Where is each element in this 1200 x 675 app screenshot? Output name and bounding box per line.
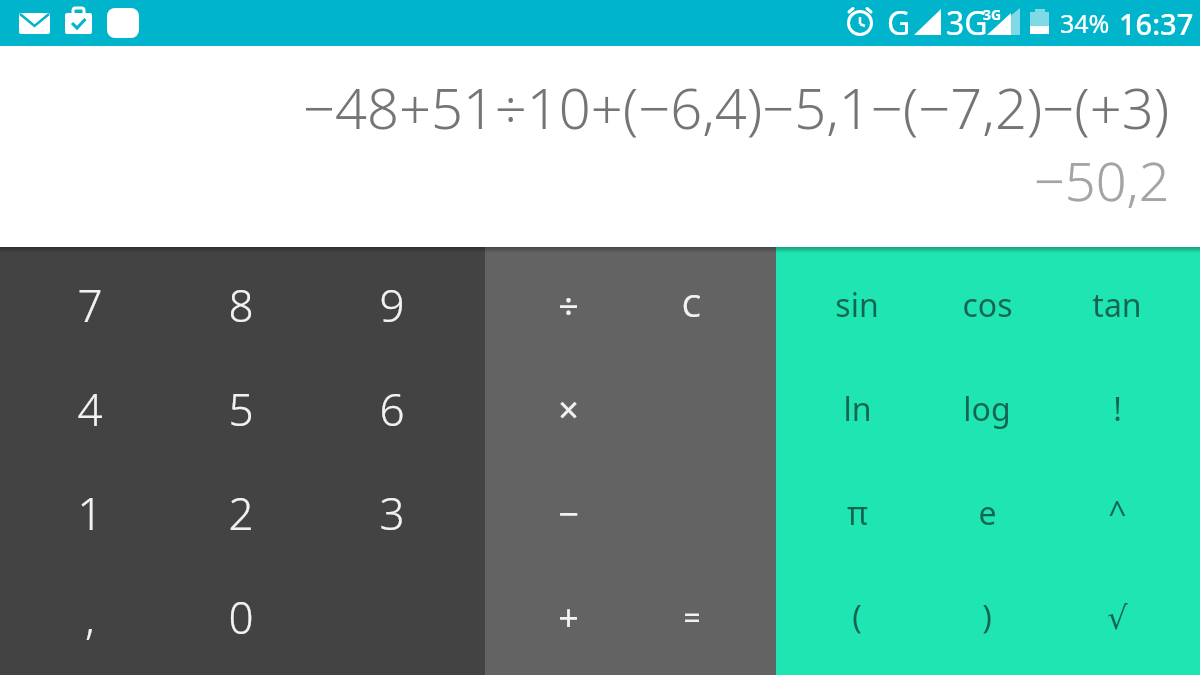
staticText: tan bbox=[1092, 283, 1142, 327]
staticText: 4 bbox=[77, 379, 103, 439]
staticText: cos bbox=[962, 283, 1013, 327]
staticText: log bbox=[963, 387, 1011, 431]
button[interactable]: 7 bbox=[14, 253, 165, 357]
button[interactable]: ÷ bbox=[507, 253, 630, 357]
button[interactable]: ^ bbox=[1052, 461, 1182, 565]
staticText: ! bbox=[1113, 387, 1122, 431]
staticText: = bbox=[683, 597, 701, 638]
staticText: π bbox=[847, 491, 868, 535]
button[interactable]: = bbox=[630, 565, 753, 669]
staticText: 2 bbox=[228, 483, 254, 543]
staticText: 9 bbox=[379, 275, 405, 335]
button[interactable]: tan bbox=[1052, 253, 1182, 357]
staticText: 8 bbox=[228, 275, 254, 335]
button[interactable]: ( bbox=[792, 565, 922, 669]
staticText: ) bbox=[982, 595, 992, 639]
staticText: 0 bbox=[228, 587, 254, 647]
staticText: 6 bbox=[379, 379, 405, 439]
button[interactable]: log bbox=[922, 357, 1052, 461]
button[interactable]: 3 bbox=[316, 461, 467, 565]
button[interactable]: 6 bbox=[316, 357, 467, 461]
staticText: 7 bbox=[77, 275, 103, 335]
button[interactable]: ) bbox=[922, 565, 1052, 669]
staticText: − bbox=[558, 489, 579, 538]
button[interactable]: ! bbox=[1052, 357, 1182, 461]
staticText: C bbox=[682, 285, 701, 326]
button[interactable]: 8 bbox=[165, 253, 316, 357]
button[interactable]: C bbox=[630, 253, 753, 357]
staticText: √ bbox=[1107, 599, 1128, 636]
button[interactable]: sin bbox=[792, 253, 922, 357]
staticText: 3G bbox=[983, 5, 1002, 24]
button[interactable]: , bbox=[14, 565, 165, 669]
staticText: e bbox=[978, 491, 997, 535]
staticText: 5 bbox=[228, 379, 254, 439]
button[interactable]: 2 bbox=[165, 461, 316, 565]
button[interactable]: π bbox=[792, 461, 922, 565]
button[interactable]: 9 bbox=[316, 253, 467, 357]
staticText: 34% bbox=[1060, 6, 1110, 40]
button[interactable]: 4 bbox=[14, 357, 165, 461]
staticText: ( bbox=[852, 595, 862, 639]
staticText: + bbox=[558, 593, 579, 642]
button[interactable]: e bbox=[922, 461, 1052, 565]
button[interactable]: 1 bbox=[14, 461, 165, 565]
staticText: −48+51÷10+(−6,4)−5,1−(−7,2)−(+3) bbox=[303, 69, 1170, 145]
button[interactable]: √ bbox=[1052, 565, 1182, 669]
staticText: ^ bbox=[1108, 491, 1127, 535]
staticText: 3G bbox=[946, 1, 988, 45]
staticText: 3 bbox=[379, 483, 405, 543]
staticText: 1 bbox=[77, 483, 103, 543]
staticText: sin bbox=[835, 283, 879, 327]
button[interactable]: × bbox=[507, 357, 630, 461]
button[interactable]: ln bbox=[792, 357, 922, 461]
button[interactable]: 0 bbox=[165, 565, 316, 669]
staticText: , bbox=[85, 587, 95, 647]
staticText: 16:37 bbox=[1119, 4, 1194, 43]
button[interactable]: + bbox=[507, 565, 630, 669]
staticText: G bbox=[887, 1, 911, 45]
button[interactable]: cos bbox=[922, 253, 1052, 357]
staticText: ln bbox=[843, 387, 872, 431]
staticText: ÷ bbox=[558, 281, 579, 330]
staticText: × bbox=[558, 385, 579, 434]
button[interactable]: 5 bbox=[165, 357, 316, 461]
button[interactable]: − bbox=[507, 461, 630, 565]
staticText: −50,2 bbox=[1034, 143, 1170, 217]
